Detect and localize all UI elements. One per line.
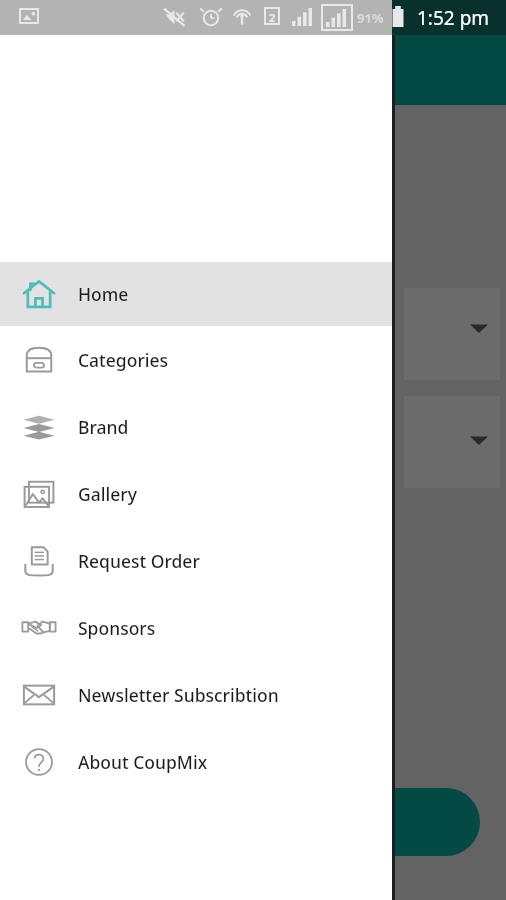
button[interactable]: Brand: [0, 393, 392, 460]
staticText: Brand: [78, 415, 129, 439]
button[interactable]: Sponsors: [0, 594, 392, 661]
staticText: 2: [269, 10, 276, 25]
staticText: Newsletter Subscribtion: [78, 683, 279, 707]
staticText: 1:52 pm: [417, 5, 490, 31]
button[interactable]: [404, 396, 500, 488]
button[interactable]: About CoupMix: [0, 728, 392, 795]
staticText: 91%: [357, 9, 384, 27]
button[interactable]: [404, 288, 500, 380]
staticText: Categories: [78, 348, 169, 372]
staticText: About CoupMix: [78, 750, 208, 774]
button[interactable]: Gallery: [0, 460, 392, 527]
staticText: Gallery: [78, 482, 137, 506]
button[interactable]: Categories: [0, 326, 392, 393]
staticText: Home: [78, 282, 129, 306]
staticText: Request Order: [78, 549, 200, 573]
button[interactable]: [386, 788, 480, 856]
button[interactable]: Newsletter Subscribtion: [0, 661, 392, 728]
button[interactable]: Home: [0, 262, 392, 326]
button[interactable]: Request Order: [0, 527, 392, 594]
staticText: Sponsors: [78, 616, 156, 640]
